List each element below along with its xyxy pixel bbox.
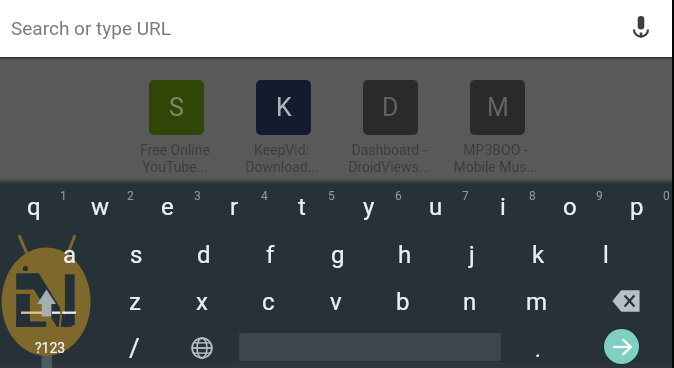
button[interactable]: ?123 [18,327,82,368]
staticText: b [396,288,410,316]
button[interactable]: z [101,278,168,325]
button[interactable]: x [168,278,235,325]
staticText: s [130,241,143,269]
button[interactable]: Voice search [626,12,656,42]
button[interactable]: / [102,327,166,368]
button[interactable]: M [444,80,551,175]
button[interactable]: . [506,329,570,368]
button[interactable]: D [337,80,444,175]
staticText: 0 [663,189,670,203]
staticText: 7 [462,189,469,203]
staticText: l [603,241,609,269]
staticText: p [630,193,644,221]
button[interactable]: y [335,183,402,230]
button[interactable]: j [438,231,505,278]
staticText: 8 [529,189,536,203]
staticText: 1 [60,189,67,203]
staticText: o [563,193,577,221]
button[interactable]: Change language [170,327,234,368]
button[interactable]: g [304,231,371,278]
staticText: 2 [127,189,134,203]
staticText: ?123 [35,340,66,356]
staticText: S [169,93,184,122]
staticText: a [63,241,77,269]
button[interactable]: c [235,278,302,325]
button[interactable]: a [36,231,103,278]
button[interactable]: p [603,183,670,230]
button[interactable]: o [536,183,603,230]
staticText: r [230,193,239,221]
staticText: f [266,241,275,269]
staticText: M [487,93,509,122]
button[interactable]: u [402,183,469,230]
staticText: w [91,193,110,221]
button[interactable]: k [505,231,572,278]
staticText: e [161,193,174,221]
staticText: YouTube... [142,159,208,175]
button[interactable]: h [371,231,438,278]
staticText: 9 [596,189,603,203]
button[interactable]: e [134,183,201,230]
staticText: m [526,288,548,316]
button[interactable]: m [503,278,570,325]
staticText: u [429,193,443,221]
button[interactable]: S [123,80,230,175]
staticText: Mobile Mus... [453,159,538,175]
staticText: . [535,337,541,363]
staticText: h [398,241,412,269]
staticText: 6 [395,189,402,203]
staticText: Download... [245,159,319,175]
staticText: D [382,93,399,122]
button[interactable]: s [103,231,170,278]
staticText: j [469,241,475,269]
staticText: Search or type URL [11,17,171,39]
staticText: 3 [194,189,201,203]
button[interactable]: f [237,231,304,278]
button[interactable]: v [302,278,369,325]
staticText: q [27,193,41,221]
staticText: v [330,288,342,316]
staticText: KeepVid: [254,142,309,158]
button[interactable]: Backspace [593,278,660,325]
staticText: y [363,193,375,221]
staticText: k [532,241,545,269]
button[interactable]: l [572,231,639,278]
button[interactable]: q [0,183,67,230]
staticText: Dashboard - [351,142,427,158]
staticText: i [500,193,506,221]
staticText: 5 [328,189,335,203]
button[interactable]: i [469,183,536,230]
staticText: g [331,241,345,269]
staticText: DroidViews... [348,159,430,175]
staticText: z [129,288,141,316]
button[interactable]: b [369,278,436,325]
button[interactable]: Search or type URL [0,0,674,57]
staticText: / [129,333,140,363]
staticText: t [298,193,306,221]
button[interactable]: Go [602,327,641,366]
staticText: K [276,93,292,122]
button[interactable]: t [268,183,335,230]
button[interactable]: d [170,231,237,278]
button[interactable]: n [436,278,503,325]
staticText: n [463,288,477,316]
staticText: d [197,241,211,269]
staticText: 4 [261,189,268,203]
staticText: MP3BOO - [463,142,528,158]
button[interactable]: r [201,183,268,230]
staticText: Free Online [140,142,210,158]
staticText: c [262,288,275,316]
staticText: x [196,288,208,316]
button[interactable]: w [67,183,134,230]
button[interactable]: K [230,80,337,175]
